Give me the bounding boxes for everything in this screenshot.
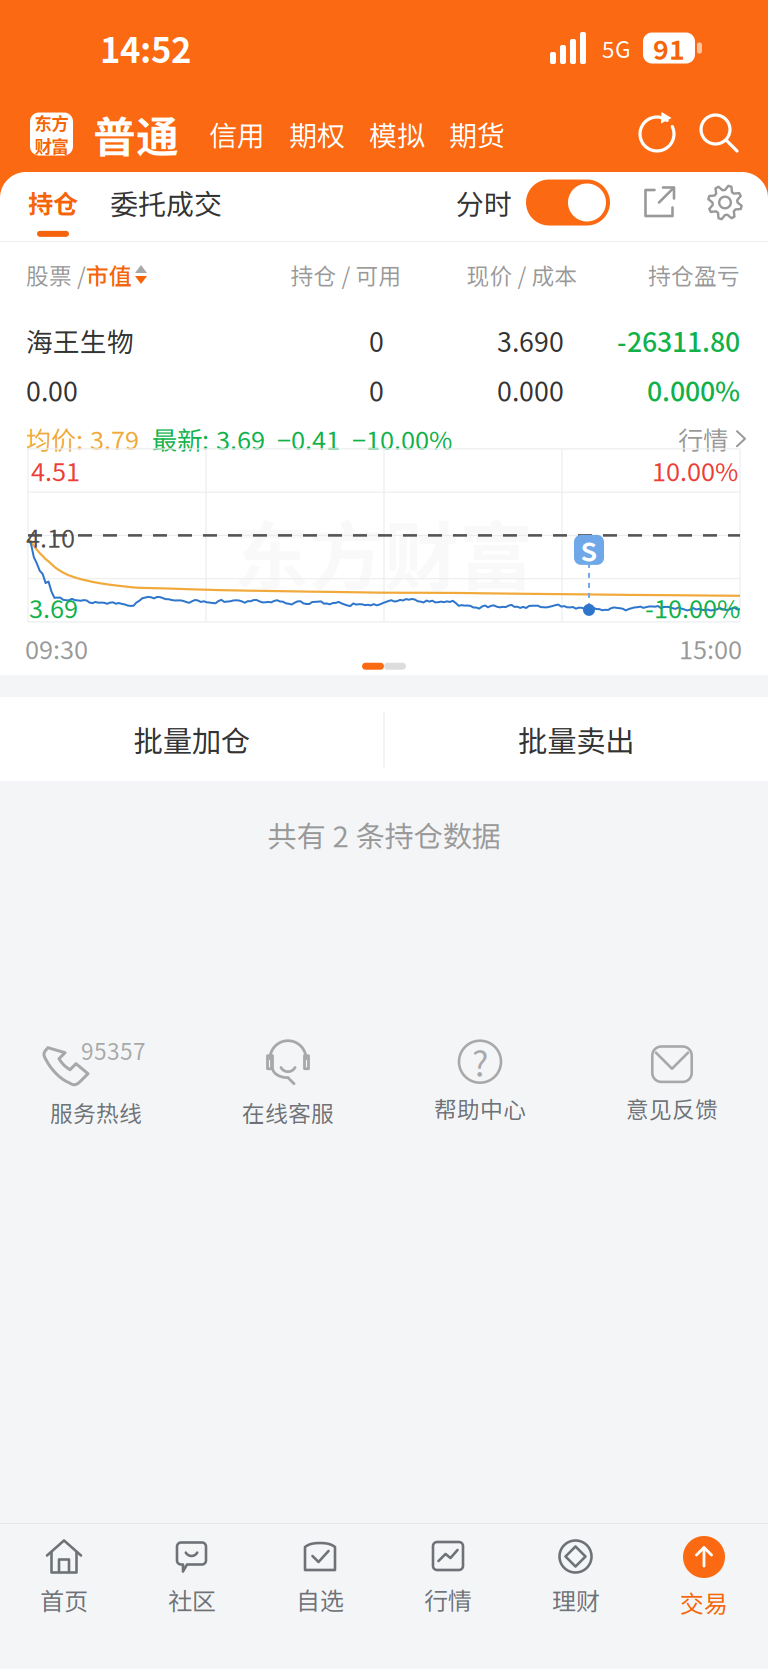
staticText: 持仓盈亏 <box>648 258 740 291</box>
button[interactable]: 期货 <box>449 114 505 154</box>
staticText: 理财 <box>552 1582 600 1617</box>
button[interactable]: 批量加仓 <box>0 697 383 781</box>
staticText: 批量加仓 <box>134 718 250 760</box>
staticText: 持仓 <box>28 184 78 221</box>
staticText: 期权 <box>289 114 345 154</box>
button[interactable]: 95357 <box>0 1034 192 1128</box>
staticText: 批量卖出 <box>518 718 634 760</box>
staticText: 分时 <box>456 182 512 223</box>
button[interactable]: 分时开关 <box>526 179 610 225</box>
button[interactable]: 行情 <box>678 420 746 457</box>
staticText: 行情 <box>424 1582 472 1617</box>
staticText: 91 <box>653 29 685 67</box>
button[interactable]: ? <box>384 1038 576 1124</box>
staticText: 普通 <box>93 103 179 165</box>
staticText: 市值 <box>86 258 132 291</box>
staticText: 东方财富 <box>234 497 534 605</box>
staticText: 自选 <box>296 1582 344 1617</box>
button[interactable]: 交易 <box>640 1536 768 1620</box>
staticText: 09:30 <box>25 630 88 667</box>
button[interactable]: 在线客服 <box>192 1034 384 1128</box>
staticText: 3.69 <box>216 420 265 457</box>
staticText: 模拟 <box>369 114 425 154</box>
button[interactable]: 分享 <box>642 183 678 221</box>
staticText: 15:00 <box>679 630 742 667</box>
button[interactable]: 期权 <box>289 114 345 154</box>
staticText: 均价: <box>26 420 83 457</box>
staticText: 0 <box>369 321 384 360</box>
staticText: 财富 <box>34 133 68 158</box>
staticText: 委托成交 <box>110 182 222 223</box>
button[interactable]: 设置 <box>706 183 744 221</box>
staticText: 在线客服 <box>242 1096 334 1128</box>
staticText: −10.00% <box>352 420 452 457</box>
button[interactable]: 刷新 <box>636 112 680 156</box>
staticText: 首页 <box>40 1582 88 1617</box>
staticText: 持仓 / 可用 <box>290 258 401 291</box>
staticText: 95357 <box>81 1034 146 1066</box>
button[interactable]: 搜索 <box>698 112 742 156</box>
staticText: 服务热线 <box>50 1096 142 1128</box>
staticText: 股票 / <box>26 258 86 291</box>
button[interactable]: 委托成交 <box>110 182 222 239</box>
staticText: 4.51 <box>31 452 80 489</box>
staticText: 4.10 <box>26 518 75 555</box>
staticText: 信用 <box>209 114 265 154</box>
staticText: 0.000% <box>647 371 740 409</box>
staticText: 期货 <box>449 114 505 154</box>
staticText: 海王生物 <box>26 321 134 360</box>
staticText: ? <box>472 1037 488 1087</box>
button[interactable]: 持仓 <box>28 184 78 237</box>
staticText: 现价 / 成本 <box>466 258 577 291</box>
button[interactable]: 模拟 <box>369 114 425 154</box>
button[interactable]: 社区 <box>128 1538 256 1617</box>
staticText: 10.00% <box>652 452 738 489</box>
staticText: 行情 <box>678 420 728 457</box>
button[interactable]: 理财 <box>512 1538 640 1617</box>
staticText: 5G <box>602 32 631 64</box>
staticText: 共有 2 条持仓数据 <box>267 813 500 856</box>
button[interactable]: 自选 <box>256 1539 384 1617</box>
staticText: −0.41 <box>277 420 340 457</box>
staticText: -10.00% <box>645 589 740 626</box>
staticText: 0 <box>369 371 384 409</box>
staticText: 3.690 <box>497 321 564 360</box>
staticText: 交易 <box>680 1585 728 1620</box>
button[interactable]: 意见反馈 <box>576 1038 768 1124</box>
staticText: S <box>580 531 597 569</box>
staticText: 最新: <box>152 420 209 457</box>
staticText: 帮助中心 <box>434 1092 526 1124</box>
button[interactable]: 批量卖出 <box>384 697 768 781</box>
staticText: 社区 <box>168 1582 216 1617</box>
button[interactable]: 信用 <box>209 114 265 154</box>
staticText: 东方 <box>34 110 68 135</box>
staticText: -26311.80 <box>617 321 740 360</box>
staticText: 0.000 <box>497 371 564 409</box>
button[interactable]: 首页 <box>0 1538 128 1617</box>
staticText: 意见反馈 <box>626 1092 718 1124</box>
staticText: 0.00 <box>26 371 78 409</box>
staticText: 14:52 <box>100 23 191 73</box>
button[interactable]: 普通 <box>93 103 179 165</box>
button[interactable]: 股票 / <box>26 258 147 291</box>
staticText: 3.69 <box>29 589 78 626</box>
button[interactable]: 行情 <box>384 1539 512 1617</box>
staticText: 3.79 <box>90 420 139 457</box>
